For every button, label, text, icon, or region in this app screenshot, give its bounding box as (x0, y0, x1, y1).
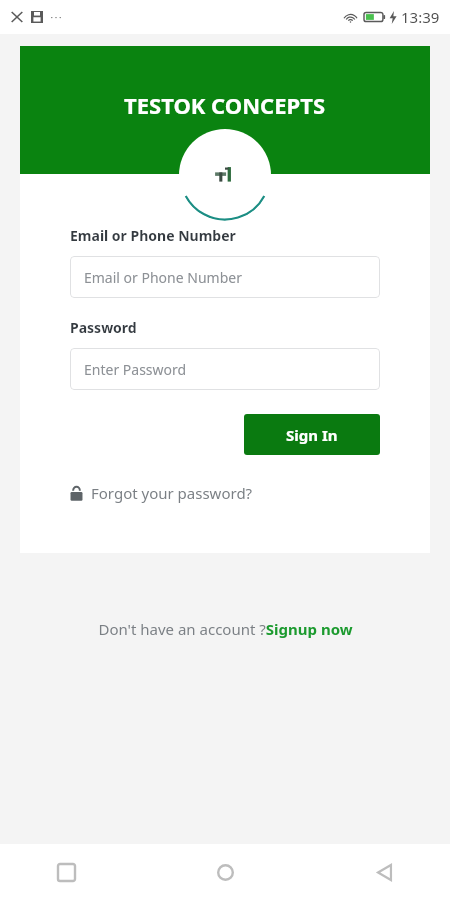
button[interactable]: Sign In (244, 414, 380, 455)
button[interactable]: Recent apps (44, 850, 88, 894)
button[interactable]: Home (203, 850, 247, 894)
staticText: Password (70, 318, 137, 337)
button[interactable]: Back (362, 850, 406, 894)
staticText: 13:39 (401, 7, 440, 27)
staticText: Email or Phone Number (70, 226, 236, 245)
button[interactable]: Enter Password (70, 348, 380, 390)
button[interactable]: Email or Phone Number (70, 256, 380, 298)
button[interactable]: Forgot your password? (70, 483, 253, 503)
staticText: Email or Phone Number (84, 268, 242, 287)
staticText: Forgot your password? (91, 483, 253, 503)
staticText: Sign In (286, 425, 338, 445)
staticText: Enter Password (84, 360, 187, 379)
button[interactable]: Don't have an account ?Signup now (98, 619, 353, 639)
other: App logo (179, 129, 271, 221)
staticText: TESTOK CONCEPTS (124, 90, 326, 120)
